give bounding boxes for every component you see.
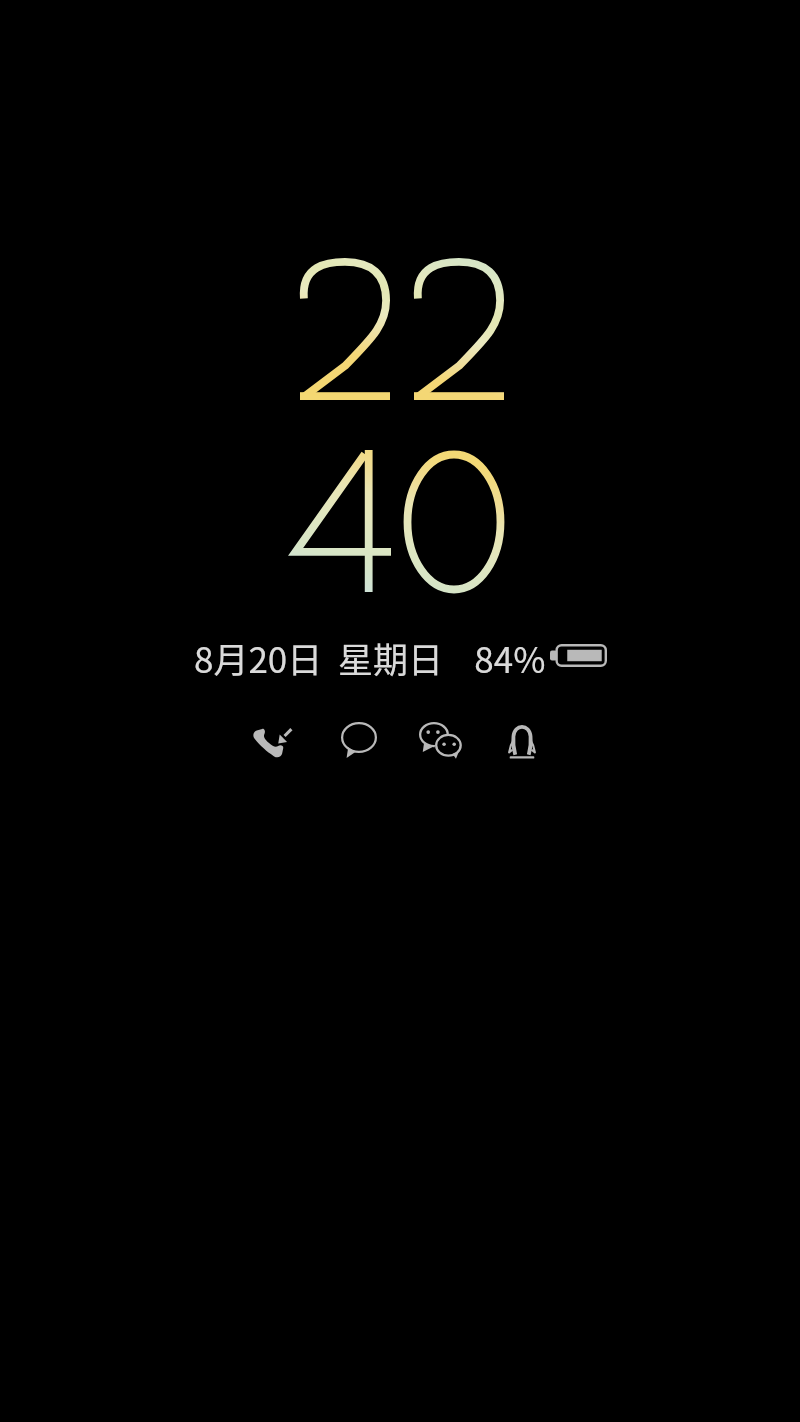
button[interactable]: QQ xyxy=(483,702,561,778)
button[interactable]: Missed call xyxy=(238,702,316,778)
button[interactable]: WeChat xyxy=(402,702,480,778)
button[interactable]: Messages xyxy=(320,702,398,778)
staticText: 8月20日 星期日 84% xyxy=(194,632,546,683)
